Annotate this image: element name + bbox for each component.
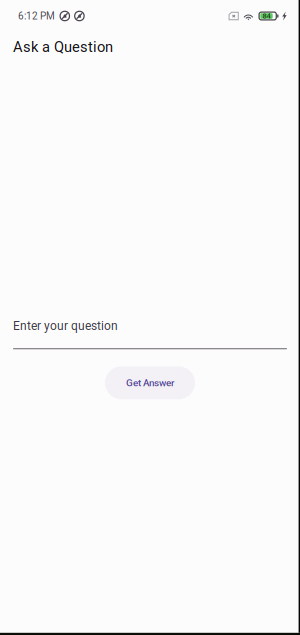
button[interactable]: Get Answer <box>105 366 195 399</box>
staticText: 84 <box>262 12 270 20</box>
staticText: Enter your question <box>13 319 118 333</box>
staticText: 6:12 PM <box>18 10 55 22</box>
staticText: Get Answer <box>126 377 174 389</box>
staticText: Ask a Question <box>13 38 113 56</box>
